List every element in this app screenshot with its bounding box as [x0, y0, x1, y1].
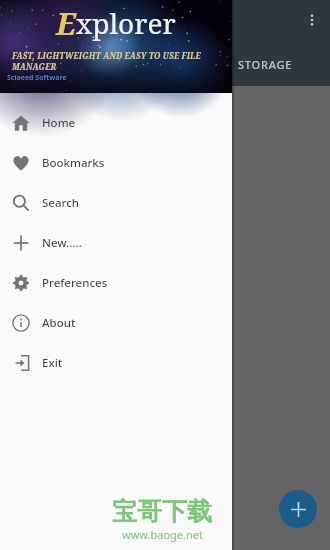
button[interactable]: Search: [0, 183, 232, 223]
button[interactable]: Preferences: [0, 263, 232, 303]
staticText: Search: [42, 195, 79, 211]
button[interactable]: Add: [279, 490, 317, 528]
staticText: 宝哥下载: [112, 496, 212, 527]
staticText: FAST, LIGHTWEIGHT AND EASY TO USE FILE M…: [12, 50, 232, 72]
button[interactable]: More options: [298, 6, 326, 34]
button[interactable]: STORAGE: [238, 57, 293, 72]
staticText: Bookmarks: [42, 155, 105, 171]
staticText: Sciaeed Software: [7, 73, 67, 83]
button[interactable]: Bookmarks: [0, 143, 232, 183]
button[interactable]: Exit: [0, 343, 232, 383]
staticText: xplorer: [76, 4, 176, 42]
button[interactable]: New.....: [0, 223, 232, 263]
staticText: Home: [42, 115, 76, 131]
staticText: New.....: [42, 235, 82, 251]
staticText: About: [42, 315, 76, 331]
staticText: www.baoge.net: [122, 527, 203, 542]
button[interactable]: Home: [0, 103, 232, 143]
staticText: Exit: [42, 355, 63, 371]
button[interactable]: About: [0, 303, 232, 343]
staticText: Preferences: [42, 275, 108, 291]
staticText: E: [56, 2, 76, 44]
